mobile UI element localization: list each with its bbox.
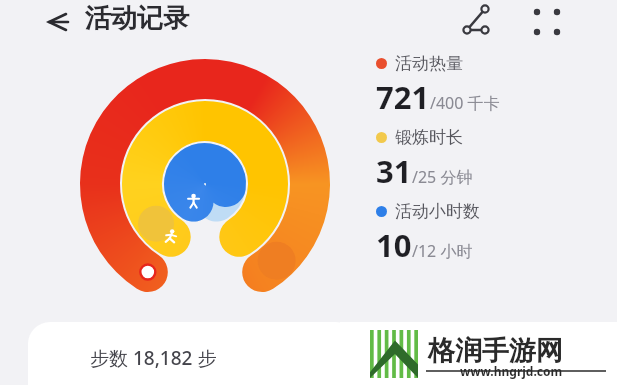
- staticText: /25 分钟: [412, 166, 473, 188]
- staticText: 10: [376, 224, 412, 266]
- staticText: /12 小时: [412, 240, 473, 262]
- button[interactable]: 锻炼时长: [376, 127, 473, 192]
- button[interactable]: More options: [525, 0, 569, 44]
- staticText: 步数 18,182 步: [90, 345, 217, 371]
- staticText: 31: [376, 150, 412, 192]
- button[interactable]: 活动小时数: [376, 201, 480, 266]
- staticText: www.hngrjd.com: [460, 363, 563, 379]
- button[interactable]: 活动热量: [376, 53, 500, 118]
- staticText: 格润手游网: [428, 334, 563, 368]
- staticText: /400 千卡: [430, 92, 500, 114]
- staticText: 721: [376, 76, 430, 118]
- button[interactable]: Back: [38, 3, 76, 41]
- staticText: 活动小时数: [395, 201, 480, 222]
- staticText: 活动热量: [395, 53, 463, 74]
- button[interactable]: 步数 18,182 步: [28, 322, 358, 385]
- staticText: 锻炼时长: [395, 127, 463, 148]
- button[interactable]: Share: [455, 0, 499, 44]
- staticText: 活动记录: [85, 2, 189, 35]
